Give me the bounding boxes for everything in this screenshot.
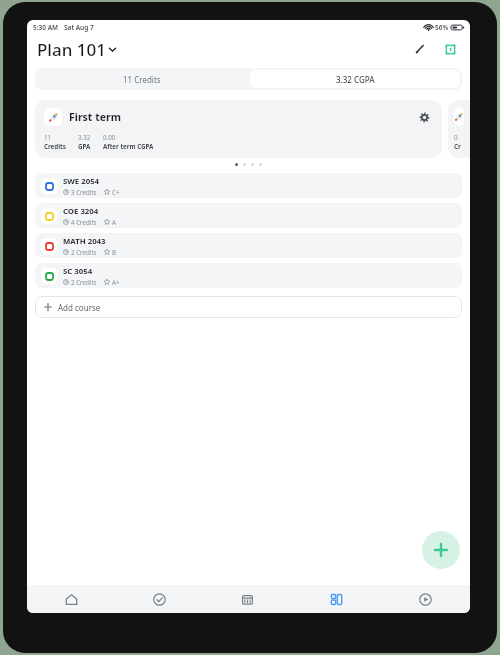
button[interactable]: Term settings xyxy=(415,108,433,126)
button[interactable]: Edit xyxy=(408,37,432,61)
button[interactable]: Tasks xyxy=(115,585,203,613)
staticText: After term CGPA xyxy=(103,142,154,150)
button[interactable]: Dashboard xyxy=(292,585,381,613)
button[interactable]: 0 xyxy=(448,100,470,158)
staticText: 2 Credits xyxy=(71,278,97,286)
button[interactable]: Home xyxy=(27,585,115,613)
staticText: Add course xyxy=(58,302,101,313)
staticText: 3.32 CGPA xyxy=(336,74,375,85)
staticText: 2 Credits xyxy=(71,248,97,256)
staticText: 56% xyxy=(435,23,449,32)
staticText: 11 xyxy=(44,133,52,141)
staticText: MATH 2043 xyxy=(63,236,106,247)
staticText: SC 3054 xyxy=(63,266,93,277)
staticText: GPA xyxy=(78,142,91,150)
button[interactable]: SC 3054 xyxy=(35,263,462,288)
staticText: 3 Credits xyxy=(71,188,97,196)
button[interactable]: Plan 101 xyxy=(35,36,119,63)
staticText: Sat Aug 7 xyxy=(64,23,94,32)
staticText: 4 Credits xyxy=(71,218,97,226)
button[interactable]: 11 Credits xyxy=(35,68,248,90)
button[interactable]: First term xyxy=(35,100,442,158)
button[interactable]: 3.32 CGPA xyxy=(250,70,460,88)
staticText: First term xyxy=(69,110,121,124)
staticText: A+ xyxy=(112,278,120,286)
button[interactable]: SWE 2054 xyxy=(35,173,462,198)
staticText: 3.32 xyxy=(78,133,91,141)
button[interactable]: COE 3204 xyxy=(35,203,462,228)
staticText: 0.00 xyxy=(103,133,116,141)
staticText: SWE 2054 xyxy=(63,176,100,187)
staticText: 11 Credits xyxy=(123,74,161,85)
staticText: B xyxy=(112,248,117,256)
button[interactable]: Calendar xyxy=(203,585,292,613)
staticText: 0 xyxy=(454,133,458,141)
staticText: Credits xyxy=(44,142,66,150)
staticText: Plan 101 xyxy=(37,38,106,61)
button[interactable]: MATH 2043 xyxy=(35,233,462,258)
button[interactable]: Timer xyxy=(381,585,470,613)
button[interactable]: Sync xyxy=(438,37,462,61)
staticText: A xyxy=(112,218,116,226)
button[interactable]: Add course xyxy=(35,296,462,318)
button[interactable]: Add xyxy=(422,531,460,569)
staticText: 5:30 AM xyxy=(33,23,59,32)
staticText: COE 3204 xyxy=(63,206,99,217)
staticText: Cr xyxy=(454,142,461,150)
staticText: C+ xyxy=(112,188,120,196)
